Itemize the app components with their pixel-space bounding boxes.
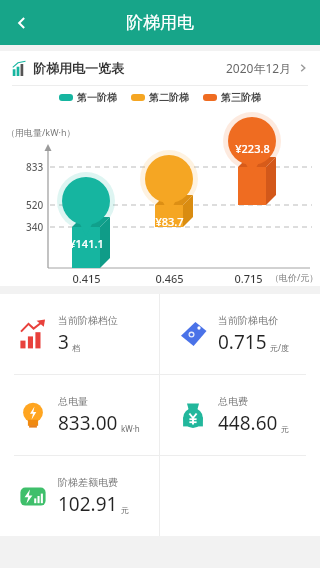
- button[interactable]: 总电量: [0, 375, 159, 455]
- staticText: 第一阶梯: [77, 91, 117, 104]
- button[interactable]: 当前阶梯档位: [0, 294, 159, 374]
- staticText: 当前阶梯档位: [58, 314, 118, 327]
- staticText: 元/度: [270, 342, 289, 353]
- staticText: 0.715: [234, 271, 263, 286]
- staticText: 阶梯用电一览表: [33, 60, 124, 76]
- staticText: ¥223.8: [235, 141, 270, 156]
- staticText: 0.415: [72, 271, 101, 286]
- staticText: 档: [72, 343, 80, 353]
- button[interactable]: 阶梯差额电费: [0, 456, 159, 536]
- button[interactable]: 阶梯用电一览表: [0, 51, 320, 85]
- staticText: 340: [26, 220, 44, 234]
- staticText: 2020年12月: [226, 60, 292, 76]
- staticText: kW·h: [121, 423, 140, 434]
- staticText: 833.00: [58, 410, 118, 436]
- staticText: 3: [58, 329, 69, 355]
- staticText: 0.465: [155, 271, 184, 286]
- staticText: 阶梯差额电费: [58, 476, 118, 489]
- button[interactable]: 总电费: [160, 375, 320, 455]
- staticText: 102.91: [58, 491, 118, 517]
- staticText: 阶梯用电: [126, 12, 194, 33]
- staticText: 元: [281, 424, 289, 434]
- staticText: 833: [26, 160, 44, 174]
- staticText: 总电费: [218, 395, 248, 408]
- staticText: （电价/元）: [270, 271, 319, 283]
- staticText: ¥83.7: [155, 214, 184, 229]
- staticText: ¥141.1: [69, 236, 104, 251]
- staticText: 第三阶梯: [221, 91, 261, 104]
- staticText: 0.715: [218, 329, 267, 355]
- staticText: 第二阶梯: [149, 91, 189, 104]
- staticText: 448.60: [218, 410, 278, 436]
- staticText: 当前阶梯电价: [218, 314, 278, 327]
- staticText: 总电量: [58, 395, 88, 408]
- staticText: （用电量/kW·h）: [6, 126, 76, 138]
- staticText: 520: [26, 198, 44, 212]
- staticText: 元: [121, 505, 129, 515]
- button[interactable]: 当前阶梯电价: [160, 294, 320, 374]
- button[interactable]: Back: [0, 1, 44, 45]
